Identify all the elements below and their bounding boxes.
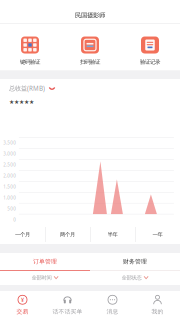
button[interactable]: ¥ xyxy=(0,295,45,315)
button[interactable]: 验证记录 xyxy=(120,36,180,65)
button[interactable]: 半年 xyxy=(90,225,135,244)
staticText: 订单管理 xyxy=(33,258,57,265)
button[interactable]: 一个月 xyxy=(0,225,45,244)
staticText: 我的 xyxy=(151,308,163,315)
staticText: 消息 xyxy=(106,308,118,315)
staticText: 键码验证 xyxy=(20,58,40,65)
button[interactable]: 全部时间 xyxy=(0,271,90,285)
staticText: 两个月 xyxy=(60,231,75,238)
staticText: 500 xyxy=(7,206,16,212)
button[interactable]: 订单管理 xyxy=(0,253,90,270)
button[interactable]: 全部状态 xyxy=(90,271,180,285)
staticText: 3,500 xyxy=(3,140,16,146)
button[interactable]: 消息 xyxy=(90,295,135,315)
button[interactable]: 键码验证 xyxy=(0,36,60,65)
button[interactable]: Toggle amount visibility xyxy=(48,86,56,90)
button[interactable]: 两个月 xyxy=(45,225,90,244)
staticText: 一年 xyxy=(152,231,162,238)
staticText: 总收益(RMB) xyxy=(9,84,45,92)
staticText: ★★★★★ xyxy=(9,98,34,105)
staticText: 财务管理 xyxy=(123,258,147,265)
button[interactable]: 我的 xyxy=(135,295,180,315)
staticText: 3,000 xyxy=(3,151,16,157)
staticText: ¥ xyxy=(21,296,24,303)
staticText: 2,000 xyxy=(3,173,16,179)
staticText: 民国摄影师 xyxy=(75,11,105,19)
staticText: 半年 xyxy=(107,231,117,238)
staticText: 2,500 xyxy=(3,162,16,168)
staticText: 全部状态 xyxy=(121,274,141,281)
staticText: 全部时间 xyxy=(31,274,51,281)
staticText: 1,500 xyxy=(3,184,16,190)
button[interactable]: 一年 xyxy=(135,225,180,244)
staticText: 扫码验证 xyxy=(80,58,100,65)
staticText: 一个月 xyxy=(15,231,30,238)
staticText: 验证记录 xyxy=(140,58,160,65)
staticText: 0 xyxy=(13,217,16,223)
staticText: 1,000 xyxy=(3,195,16,201)
button[interactable]: 扫码验证 xyxy=(60,36,120,65)
staticText: 话不话买单 xyxy=(52,308,82,315)
button[interactable]: 话不话买单 xyxy=(45,295,90,315)
button[interactable]: 财务管理 xyxy=(90,253,180,270)
staticText: 交易 xyxy=(16,308,28,315)
